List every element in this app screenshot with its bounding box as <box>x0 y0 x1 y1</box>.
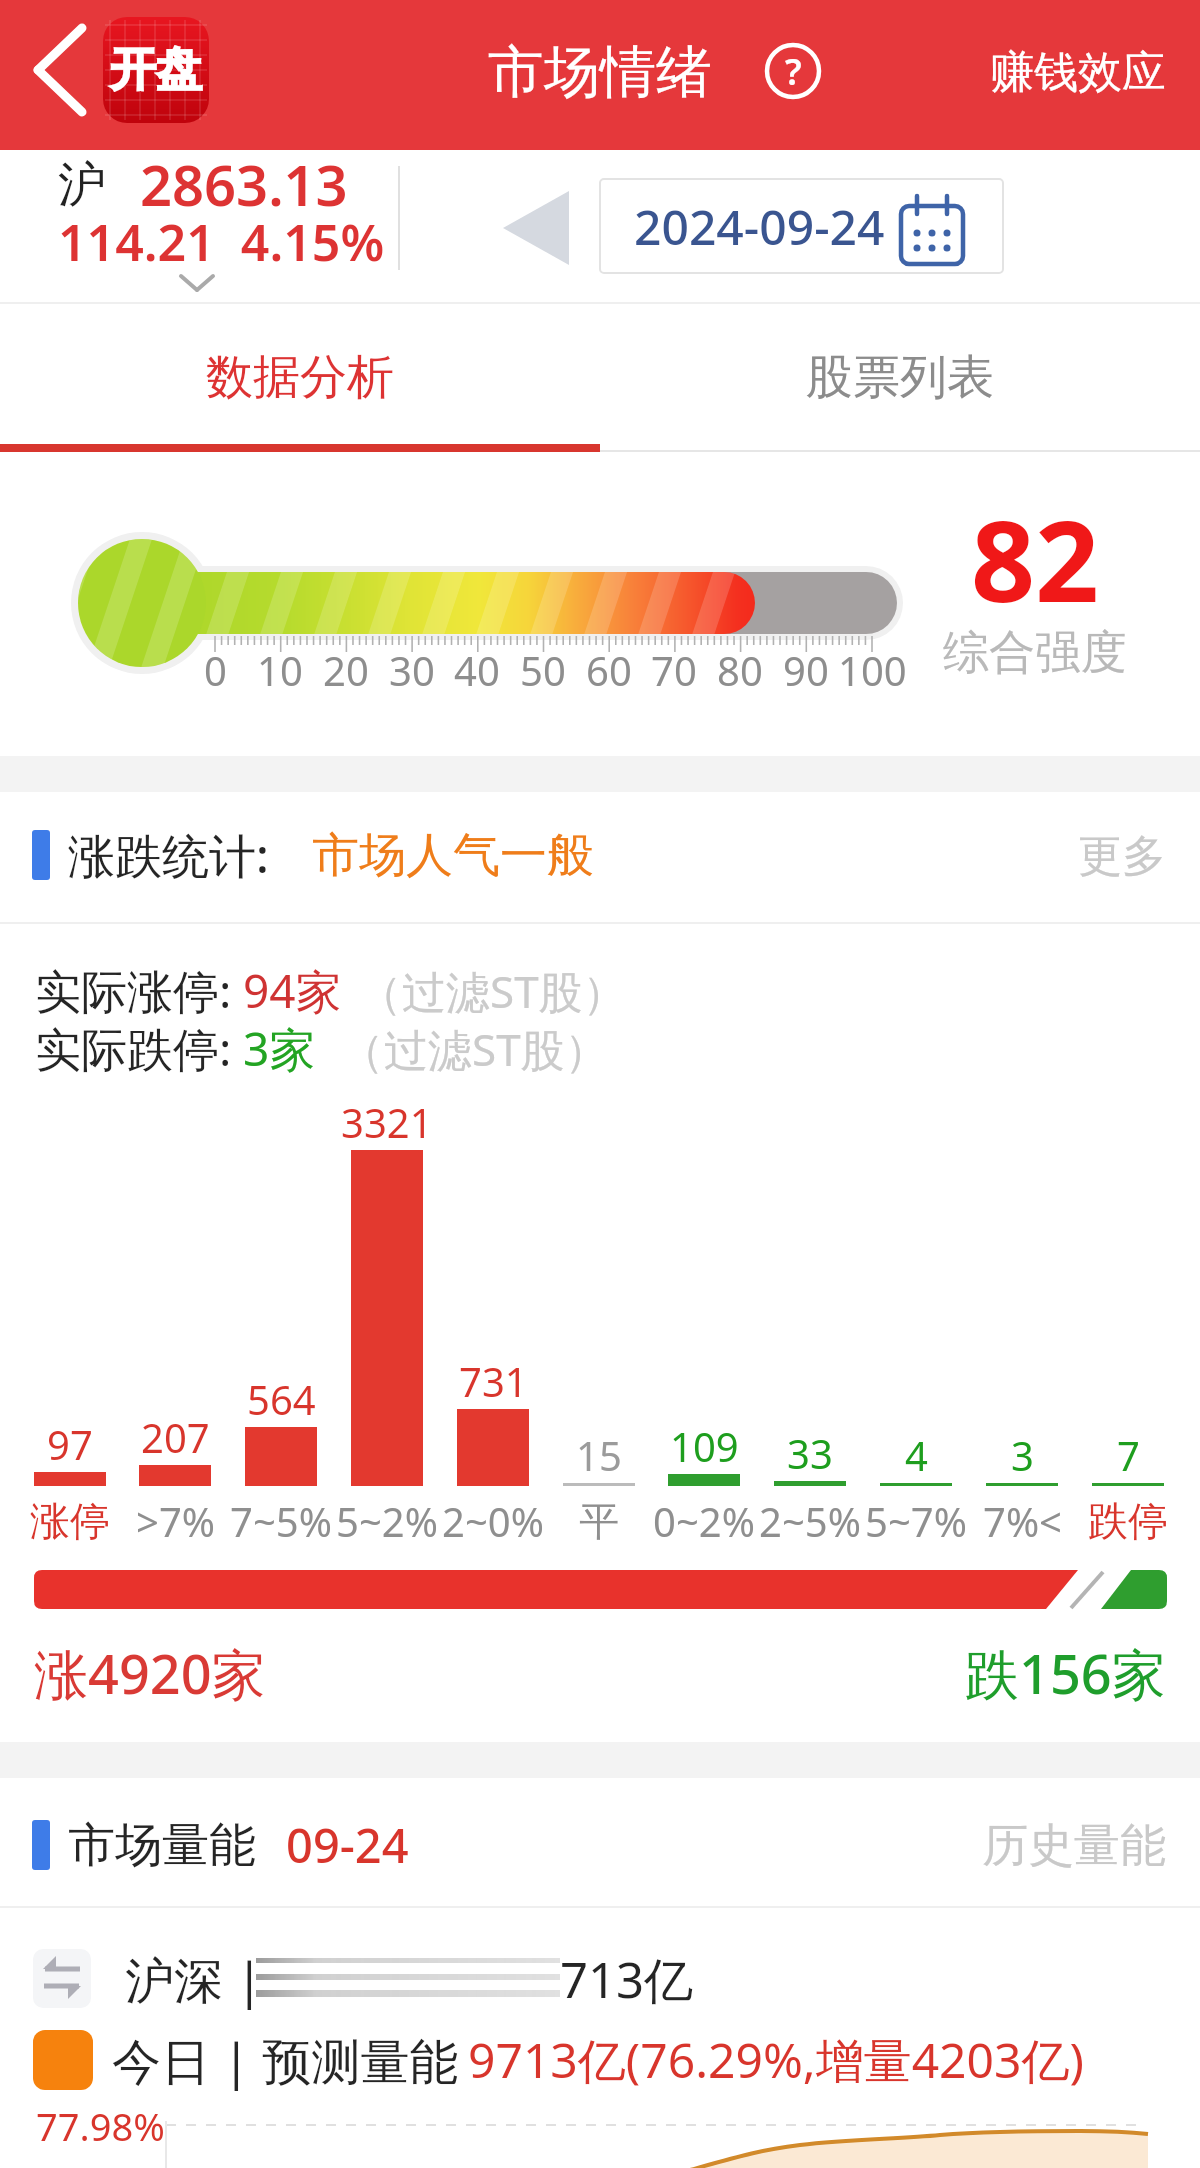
staticText: 赚钱效应 <box>990 45 1166 100</box>
staticText: 涨跌统计: <box>68 823 269 887</box>
staticText: 7~5% <box>230 1494 332 1548</box>
staticText: >7% <box>136 1494 215 1548</box>
staticText: 09-24 <box>286 1813 409 1877</box>
staticText: 沪 <box>58 155 106 215</box>
staticText: 0~2% <box>653 1494 755 1548</box>
staticText: 60 <box>586 643 632 697</box>
staticText: 4 <box>905 1428 928 1482</box>
staticText: 平 <box>579 1496 619 1546</box>
staticText: 15 <box>576 1428 622 1482</box>
staticText: 涨停 <box>30 1496 110 1546</box>
staticText: 30 <box>389 643 435 697</box>
staticText: 数据分析 <box>206 348 394 407</box>
staticText: 跌停 <box>1088 1496 1168 1546</box>
button[interactable]: 更多 <box>1020 817 1166 896</box>
staticText: 10 <box>257 643 303 697</box>
staticText: 3321 <box>341 1095 433 1149</box>
staticText: 50 <box>520 643 566 697</box>
staticText: 207 <box>141 1410 210 1464</box>
staticText: 开盘 <box>110 41 202 99</box>
staticText: 市场情绪 <box>488 37 712 108</box>
staticText: 更多 <box>1078 829 1166 884</box>
button[interactable]: 历史量能 <box>940 1805 1166 1887</box>
staticText: 82 <box>971 482 1100 635</box>
staticText: 实际跌停: <box>35 1017 232 1080</box>
staticText: 564 <box>247 1372 316 1426</box>
staticText: 20 <box>323 643 369 697</box>
staticText: 7 <box>1117 1428 1140 1482</box>
staticText: 70 <box>651 643 697 697</box>
staticText: 市场量能 <box>68 1816 256 1875</box>
staticText: 40 <box>454 643 500 697</box>
staticText: 0 <box>204 643 227 697</box>
staticText: 综合强度 <box>943 624 1127 682</box>
staticText: 97 <box>47 1417 93 1471</box>
staticText: ? <box>785 47 802 96</box>
staticText: 沪深 | <box>125 1946 263 2013</box>
staticText: 3 <box>1011 1428 1034 1482</box>
staticText: 涨4920家 <box>34 1636 266 1710</box>
staticText: （过滤ST股） <box>358 961 627 1021</box>
staticText: 市场人气一般 <box>312 826 594 885</box>
button[interactable] <box>600 179 1003 273</box>
staticText: 80 <box>717 643 763 697</box>
staticText: 3家 <box>243 1017 316 1080</box>
staticText: 9713亿(76.29%,增量4203亿) <box>468 2027 1084 2093</box>
staticText: 77.98% <box>36 2100 165 2152</box>
staticText: 90 <box>783 643 829 697</box>
button[interactable]: 股票列表 <box>750 335 1050 419</box>
staticText: 713亿 <box>560 1946 694 2013</box>
staticText: 94家 <box>243 959 342 1022</box>
staticText: 109 <box>670 1419 739 1473</box>
staticText: 731 <box>459 1354 528 1408</box>
staticText: 5~2% <box>336 1494 438 1548</box>
staticText: 2863.13 <box>140 146 348 222</box>
button[interactable] <box>20 30 100 130</box>
button[interactable]: 数据分析 <box>150 335 450 419</box>
staticText: 114.21 4.15% <box>58 208 385 276</box>
staticText: 33 <box>787 1426 833 1480</box>
button[interactable]: 开盘 <box>103 17 209 123</box>
staticText: 历史量能 <box>982 1817 1166 1875</box>
staticText: 2~5% <box>759 1494 861 1548</box>
button[interactable]: 赚钱效应 <box>940 33 1166 112</box>
staticText: 今日 | 预测量能 <box>112 2027 459 2094</box>
staticText: 2024-09-24 <box>634 194 885 259</box>
staticText: （过滤ST股） <box>340 1019 609 1079</box>
staticText: 5~7% <box>865 1494 967 1548</box>
staticText: 7%< <box>983 1494 1062 1548</box>
staticText: 实际涨停: <box>35 959 232 1022</box>
button[interactable]: ? <box>763 41 823 101</box>
staticText: 2~0% <box>442 1494 544 1548</box>
staticText: 100 <box>838 643 907 697</box>
staticText: 股票列表 <box>806 348 994 407</box>
staticText: 跌156家 <box>965 1636 1166 1710</box>
